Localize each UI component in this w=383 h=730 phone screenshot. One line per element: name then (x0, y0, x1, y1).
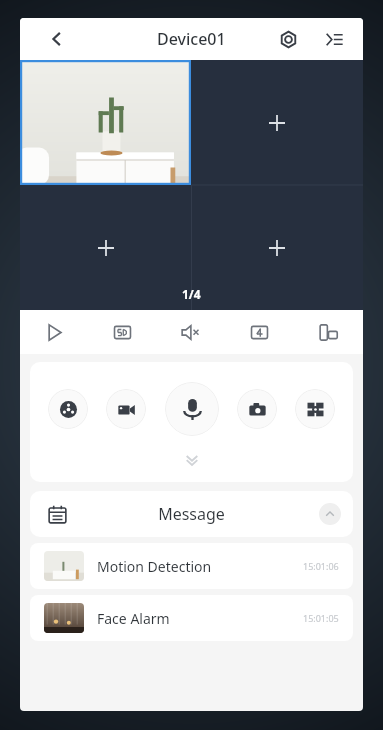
button[interactable]: Snapshot (237, 389, 277, 429)
staticText: Motion Detection (97, 557, 212, 576)
button[interactable]: Playlist (317, 22, 351, 56)
staticText: Device01 (157, 28, 226, 50)
staticText: 15:01:06 (303, 560, 339, 572)
button[interactable]: Back (40, 22, 74, 56)
button[interactable]: Motion Detection (30, 543, 353, 589)
staticText: Face Alarm (97, 609, 170, 628)
button[interactable]: Playback (48, 389, 88, 429)
staticText: Message (158, 503, 225, 525)
staticText: 1/4 (182, 286, 201, 302)
button[interactable]: Add camera 2 (191, 60, 363, 185)
button[interactable]: 4 channels (225, 310, 294, 354)
staticText: 15:01:05 (303, 612, 339, 624)
button[interactable]: SD quality (88, 310, 156, 354)
button[interactable]: Camera 1 live view (20, 60, 191, 185)
button[interactable]: Calendar (30, 491, 353, 537)
button[interactable]: Mute (156, 310, 225, 354)
button[interactable]: Play (20, 310, 88, 354)
button[interactable]: PTZ control (295, 389, 335, 429)
button[interactable]: Add camera 3 (20, 185, 191, 310)
button[interactable]: Settings (271, 22, 305, 56)
button[interactable]: Collapse messages (319, 503, 341, 525)
other: Calendar (44, 501, 70, 527)
button[interactable]: Face Alarm (30, 595, 353, 641)
button[interactable]: Record video (106, 389, 146, 429)
button[interactable]: Add camera 4 (191, 185, 363, 310)
button[interactable]: Rotate screen (294, 310, 363, 354)
button[interactable]: Expand more controls (179, 448, 205, 474)
button[interactable]: Talk (165, 382, 219, 436)
